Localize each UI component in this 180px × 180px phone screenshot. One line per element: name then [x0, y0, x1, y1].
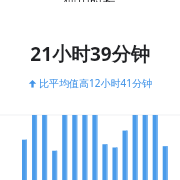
button[interactable]: 使用时长	[0, 0, 180, 9]
other: Increase	[28, 79, 37, 88]
staticText: 使用时长	[64, 0, 116, 2]
button[interactable]: Increase	[0, 76, 180, 90]
staticText: 21小时39分钟	[30, 41, 150, 67]
button[interactable]	[0, 103, 180, 180]
staticText: 比平均值高12小时41分钟	[39, 76, 152, 90]
